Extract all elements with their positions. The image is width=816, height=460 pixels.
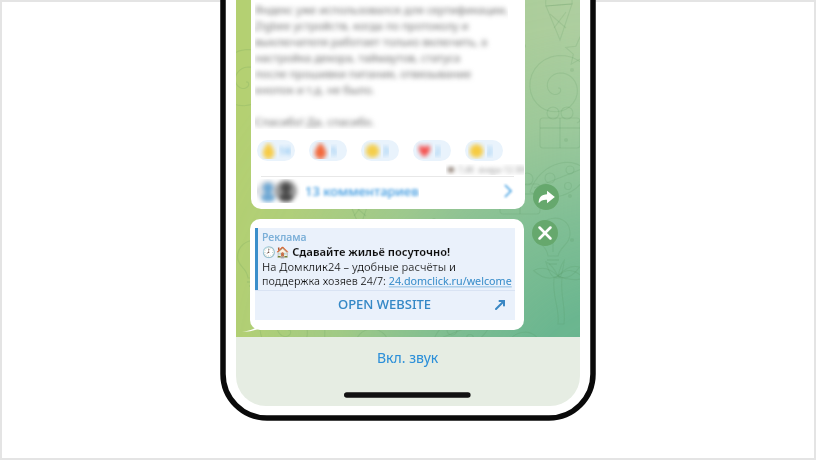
button[interactable]: 14 <box>257 140 295 161</box>
button[interactable]: Close <box>532 220 558 246</box>
staticText: OPEN WEBSITE <box>338 295 432 313</box>
staticText: поддержка хозяев 24/7: 24.domclick.ru/we… <box>262 274 512 289</box>
button[interactable]: Share <box>533 184 559 210</box>
staticText: 👁 7,4K вчера 12:30 <box>446 164 524 175</box>
button[interactable]: Вкл. звук <box>236 337 580 377</box>
button[interactable]: 2 <box>465 140 503 161</box>
button[interactable]: 5 <box>309 140 347 161</box>
staticText: 3 <box>383 144 389 158</box>
staticText: На Домклик24 – удобные расчёты и <box>262 259 457 274</box>
staticText: Реклама <box>262 230 307 244</box>
button[interactable]: 13 комментариев <box>251 177 525 205</box>
staticText: Вкл. звук <box>377 348 439 367</box>
staticText: 13 комментариев <box>305 182 419 200</box>
staticText: Яндекс уже использовался для сертификаци… <box>255 2 508 129</box>
staticText: 🕗🏠 Сдавайте жильё посуточно! <box>262 244 451 259</box>
staticText: 14 <box>279 144 291 158</box>
staticText: 2 <box>435 144 441 158</box>
staticText: 2 <box>487 144 493 158</box>
button[interactable]: 2 <box>413 140 451 161</box>
staticText: 5 <box>331 144 337 158</box>
button[interactable]: OPEN WEBSITE <box>255 291 515 320</box>
button[interactable]: 3 <box>361 140 399 161</box>
